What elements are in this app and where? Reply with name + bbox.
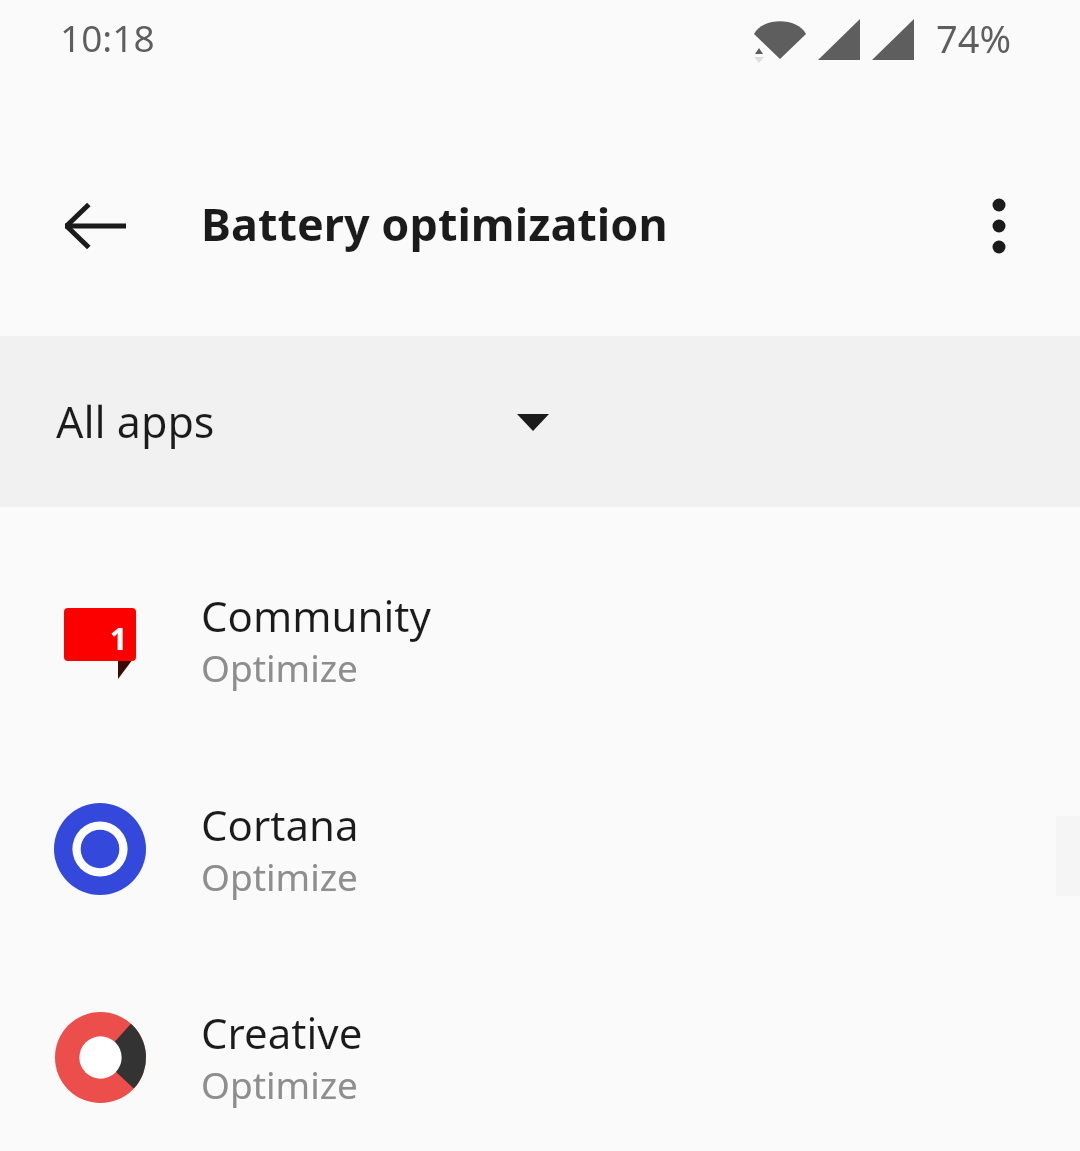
button[interactable]: Back	[30, 161, 160, 291]
staticText: All apps	[56, 392, 215, 451]
button[interactable]: Cortana	[0, 744, 1080, 953]
staticText: Community	[201, 587, 431, 644]
staticText: Cortana	[201, 796, 359, 853]
staticText: Optimize	[201, 642, 358, 692]
button[interactable]: Creative	[0, 952, 1080, 1151]
button[interactable]: More options	[934, 161, 1064, 291]
staticText: 74%	[936, 12, 1012, 64]
button[interactable]: All apps	[0, 336, 1080, 507]
staticText: Optimize	[201, 851, 358, 901]
button[interactable]: 1	[0, 535, 1080, 744]
staticText: 10:18	[60, 12, 155, 62]
staticText: Battery optimization	[201, 193, 668, 254]
staticText: Optimize	[201, 1059, 358, 1109]
staticText: Creative	[201, 1004, 363, 1061]
staticText: 1	[110, 618, 128, 659]
